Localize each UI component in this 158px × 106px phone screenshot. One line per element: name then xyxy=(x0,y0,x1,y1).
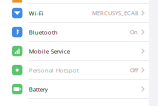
button[interactable]: Battery xyxy=(0,80,149,98)
staticText: Off xyxy=(130,66,138,74)
staticText: MERCUSYS_ECA8 xyxy=(92,9,138,17)
staticText: On xyxy=(130,28,138,36)
button[interactable]: Wi-Fi xyxy=(0,4,149,22)
staticText: Battery xyxy=(29,85,48,93)
button[interactable]: Mobile Service xyxy=(0,42,149,60)
staticText: Mobile Service xyxy=(29,47,70,55)
staticText: Wi-Fi xyxy=(29,9,44,17)
button[interactable]: Personal Hotspot xyxy=(0,61,149,79)
staticText: Personal Hotspot xyxy=(29,66,79,74)
staticText: Bluetooth xyxy=(29,28,58,36)
button[interactable]: Bluetooth xyxy=(0,23,149,41)
